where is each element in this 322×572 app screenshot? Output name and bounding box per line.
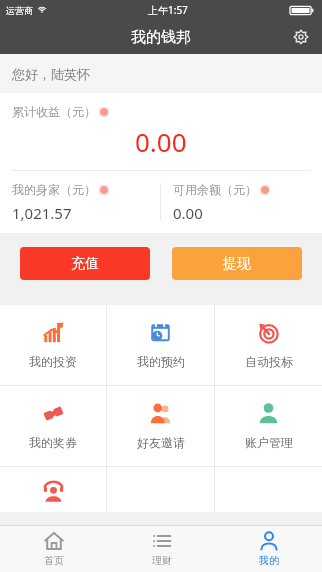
button[interactable]: 我的投资 bbox=[0, 305, 106, 385]
button[interactable]: 理财 bbox=[108, 526, 215, 572]
staticText: 可用余额（元） bbox=[173, 182, 257, 197]
staticText: 首页 bbox=[44, 554, 64, 567]
button[interactable]: 我的预约 bbox=[107, 305, 214, 385]
staticText: 我的预约 bbox=[137, 354, 185, 369]
button[interactable]: 账户管理 bbox=[215, 386, 322, 466]
button[interactable]: 提现 bbox=[172, 247, 302, 280]
staticText: 账户管理 bbox=[245, 435, 293, 450]
button[interactable]: 我的奖券 bbox=[0, 386, 106, 466]
staticText: 累计收益（元） bbox=[12, 104, 96, 119]
staticText: 您好，陆英怀 bbox=[12, 66, 90, 82]
staticText: 提现 bbox=[223, 255, 251, 273]
staticText: 运营商 bbox=[6, 5, 33, 16]
staticText: 上午1:57 bbox=[148, 3, 188, 17]
staticText: 好友邀请 bbox=[137, 435, 185, 450]
button[interactable]: Settings bbox=[288, 24, 314, 50]
staticText: 我的身家（元） bbox=[12, 182, 96, 197]
staticText: 自动投标 bbox=[245, 354, 293, 369]
button[interactable] bbox=[0, 467, 106, 512]
button[interactable]: 首页 bbox=[0, 526, 108, 572]
button[interactable]: 好友邀请 bbox=[107, 386, 214, 466]
staticText: 我的钱邦 bbox=[131, 28, 191, 47]
staticText: 1,021.57 bbox=[12, 203, 72, 223]
button[interactable]: 自动投标 bbox=[215, 305, 322, 385]
staticText: 我的投资 bbox=[29, 354, 77, 369]
staticText: 充值 bbox=[71, 255, 99, 273]
staticText: 我的 bbox=[259, 554, 279, 567]
button[interactable]: 可用余额（元） bbox=[161, 171, 322, 233]
button[interactable]: 我的 bbox=[215, 526, 322, 572]
staticText: 理财 bbox=[152, 554, 172, 567]
staticText: 我的奖券 bbox=[29, 435, 77, 450]
staticText: 0.00 bbox=[135, 124, 187, 159]
staticText: 0.00 bbox=[173, 203, 203, 223]
button[interactable]: 我的身家（元） bbox=[0, 171, 160, 233]
button[interactable]: 充值 bbox=[20, 247, 150, 280]
